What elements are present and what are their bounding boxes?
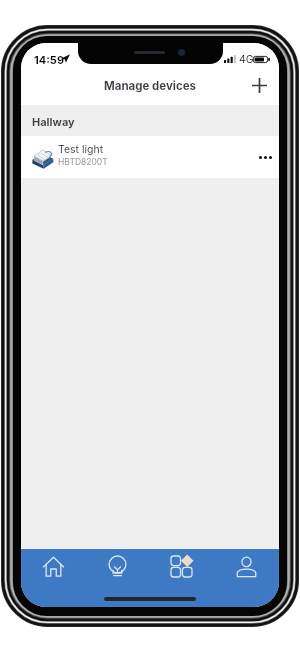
staticText: 4G: [239, 53, 254, 66]
staticText: Test light: [58, 143, 104, 156]
button[interactable]: Test light: [21, 136, 279, 178]
button[interactable]: Lights: [85, 549, 149, 583]
button[interactable]: Profile: [214, 549, 279, 583]
button[interactable]: Home: [21, 549, 85, 583]
staticText: HBTD8200T: [58, 157, 108, 167]
staticText: 14:59: [34, 53, 65, 66]
button[interactable]: Devices: [149, 549, 214, 583]
staticText: Manage devices: [104, 79, 197, 93]
staticText: Hallway: [32, 115, 75, 128]
button[interactable]: More options: [239, 137, 279, 177]
button[interactable]: Add device: [240, 66, 279, 105]
